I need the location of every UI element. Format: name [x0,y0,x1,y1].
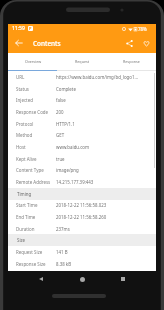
staticText: Response Code [16,109,56,115]
staticText: Complete [56,86,152,92]
staticText: URL [16,74,56,80]
staticText: Status [16,86,56,92]
button[interactable]: Size [8,234,156,246]
button[interactable]: End Time [8,211,156,223]
staticText: 141 B [56,249,152,255]
staticText: 237ms [56,226,152,232]
button[interactable]: Remote Address [8,176,156,188]
staticText: Method [16,132,56,138]
button[interactable]: Method [8,129,156,141]
button[interactable]: Back [34,272,48,286]
staticText: false [56,97,152,103]
button[interactable]: Kept Alive [8,153,156,165]
staticText: GET [56,132,152,138]
button[interactable]: Injected [8,94,156,106]
staticText: End Time [16,214,56,220]
staticText: image/png [56,167,152,173]
button[interactable]: Response [107,53,156,70]
staticText: Request Size [16,249,56,255]
staticText: Contents [33,39,61,48]
staticText: 200 [56,109,152,115]
button[interactable]: Recent apps [116,272,130,286]
staticText: Timing [17,191,32,197]
staticText: Kept Alive [16,156,56,162]
staticText: Overview [25,59,42,64]
button[interactable]: Start Time [8,199,156,211]
button[interactable]: Host [8,141,156,153]
button[interactable]: Duration [8,223,156,235]
button[interactable]: URL [8,71,156,83]
staticText: Remote Address [16,179,56,185]
staticText: 11:59 [12,25,25,32]
button[interactable]: Overview [8,53,58,70]
staticText: HTTP/1.1 [56,121,152,127]
button[interactable]: Request Size [8,246,156,258]
button[interactable]: Timing [8,188,156,200]
staticText: 2018-12-22 11:56:58.260 [56,214,152,220]
staticText: Injected [16,97,56,103]
button[interactable]: Response Size [8,258,156,270]
staticText: Duration [16,226,56,232]
button[interactable]: Home [75,272,89,286]
staticText: Size [17,237,26,243]
button[interactable]: Protocol [8,118,156,130]
staticText: Host [16,144,56,150]
button[interactable]: Back [11,35,27,51]
staticText: Response Size [16,261,56,267]
button[interactable]: Status [8,83,156,95]
staticText: https://www.baidu.com/img/bd_logo1... [56,74,152,80]
staticText: 2018-12-22 11:56:58.023 [56,202,152,208]
button[interactable]: Request [58,53,107,70]
staticText: true [56,156,152,162]
staticText: Start Time [16,202,56,208]
staticText: Response [123,59,140,64]
staticText: Request [75,59,90,64]
staticText: Content Type [16,167,56,173]
button[interactable]: Content Type [8,164,156,176]
button[interactable]: Favorite [139,36,153,50]
button[interactable]: Share [122,36,136,50]
staticText: 14.215.177.39:443 [56,179,152,185]
staticText: 8.38 kB [56,261,152,267]
staticText: Protocol [16,121,56,127]
staticText: P [29,26,32,31]
staticText: 78% [138,26,147,32]
staticText: www.baidu.com [56,144,152,150]
button[interactable]: Response Code [8,106,156,118]
